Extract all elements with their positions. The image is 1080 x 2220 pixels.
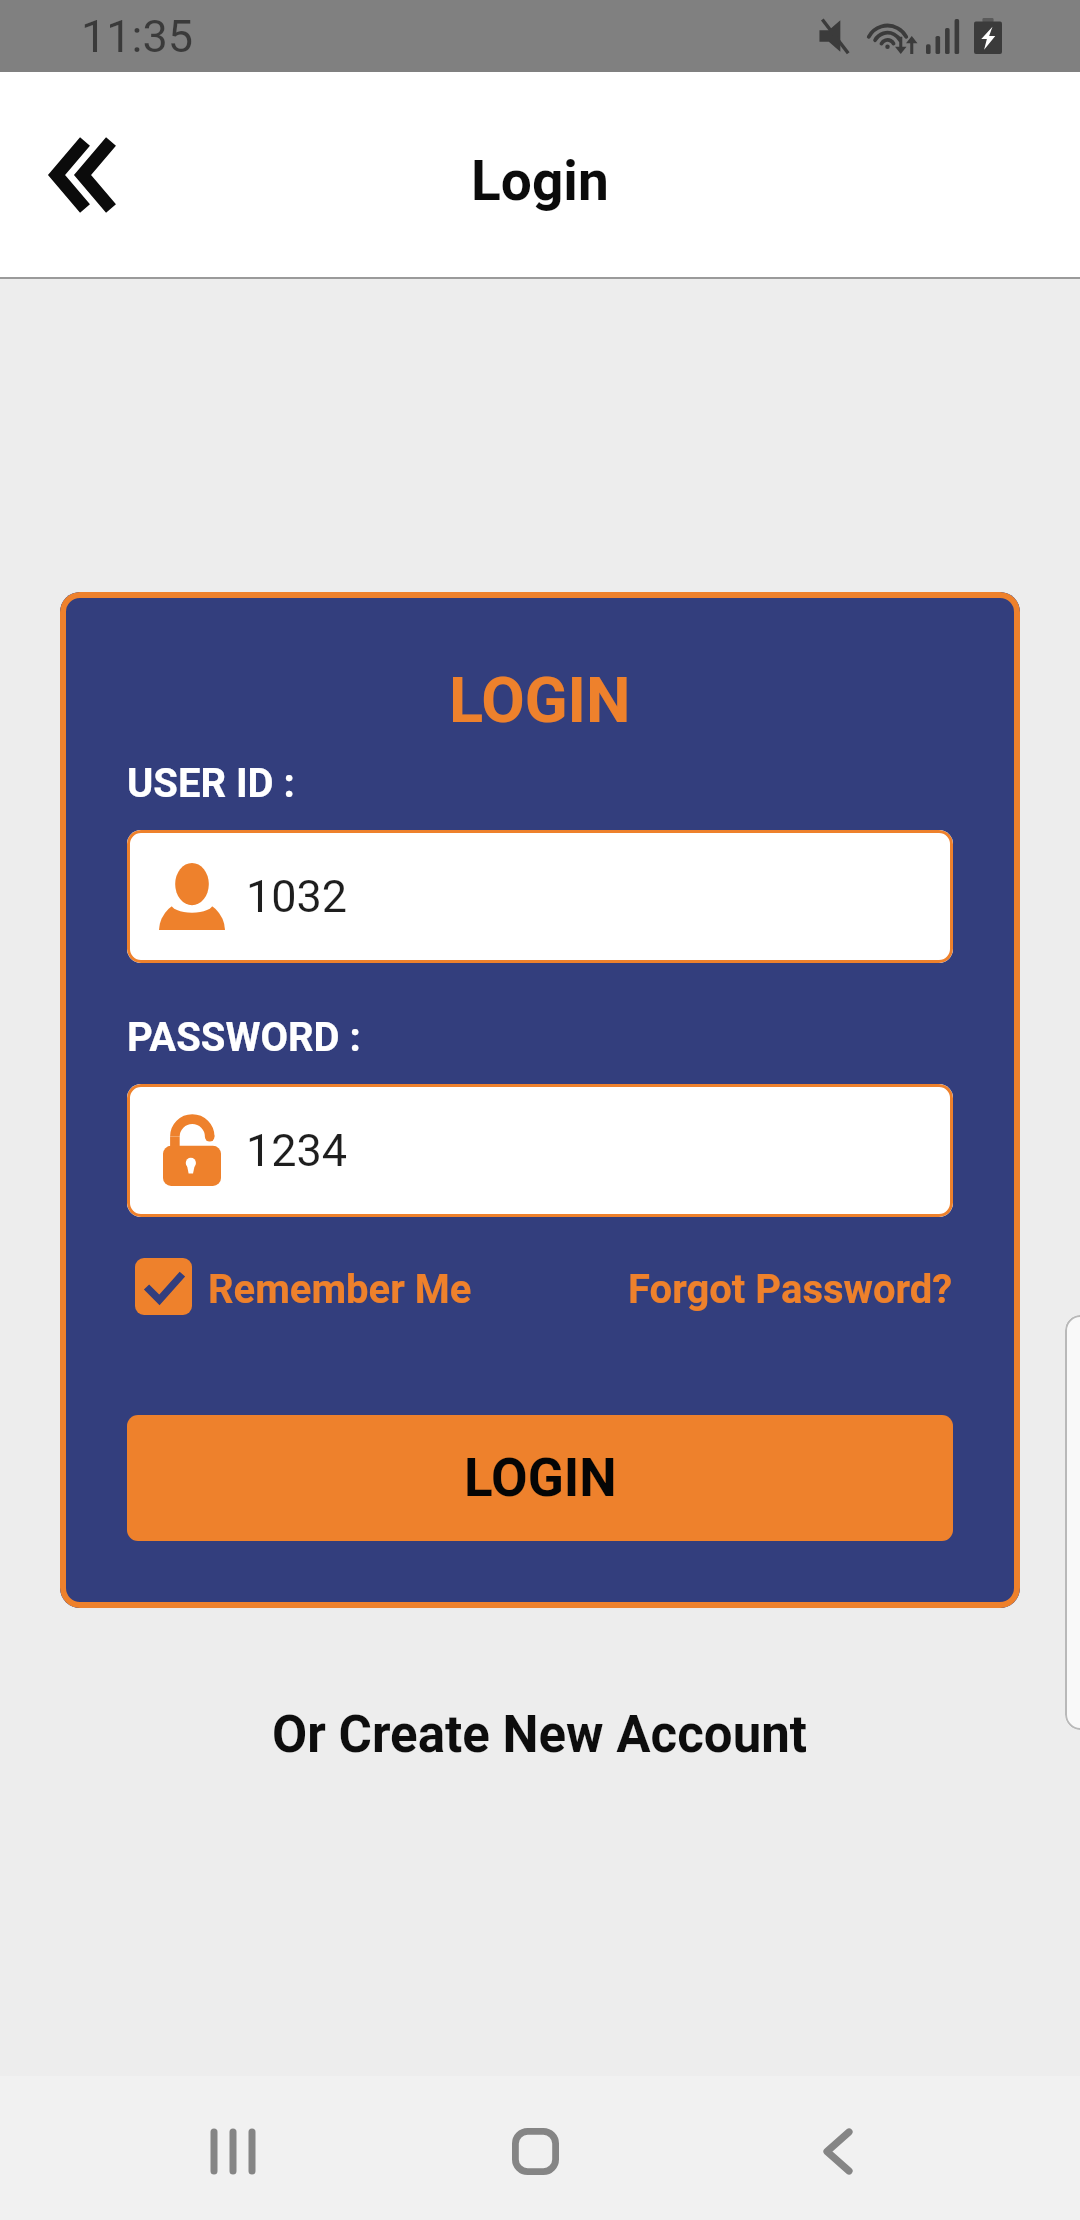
button[interactable]: Recent apps xyxy=(173,2091,293,2211)
staticText: LOGIN xyxy=(449,664,631,738)
staticText: 11:35 xyxy=(81,10,194,63)
button[interactable]: Home xyxy=(475,2091,595,2211)
button[interactable]: 1032 xyxy=(127,830,953,963)
staticText: Login xyxy=(471,149,609,213)
button[interactable]: Remember Me xyxy=(127,1258,472,1315)
staticText: 1032 xyxy=(246,870,348,923)
button[interactable]: Forgot Password? xyxy=(628,1266,953,1313)
staticText: LOGIN xyxy=(464,1447,617,1509)
staticText: Remember Me xyxy=(208,1266,472,1313)
button[interactable]: Back xyxy=(22,112,148,238)
button[interactable]: LOGIN xyxy=(127,1415,953,1541)
button[interactable]: Back xyxy=(778,2091,898,2211)
button[interactable]: Or Create New Account xyxy=(272,1705,808,1765)
staticText: PASSWORD : xyxy=(127,1014,361,1061)
staticText: USER ID : xyxy=(127,760,295,807)
button[interactable]: 1234 xyxy=(127,1084,953,1217)
staticText: 1234 xyxy=(246,1124,348,1177)
